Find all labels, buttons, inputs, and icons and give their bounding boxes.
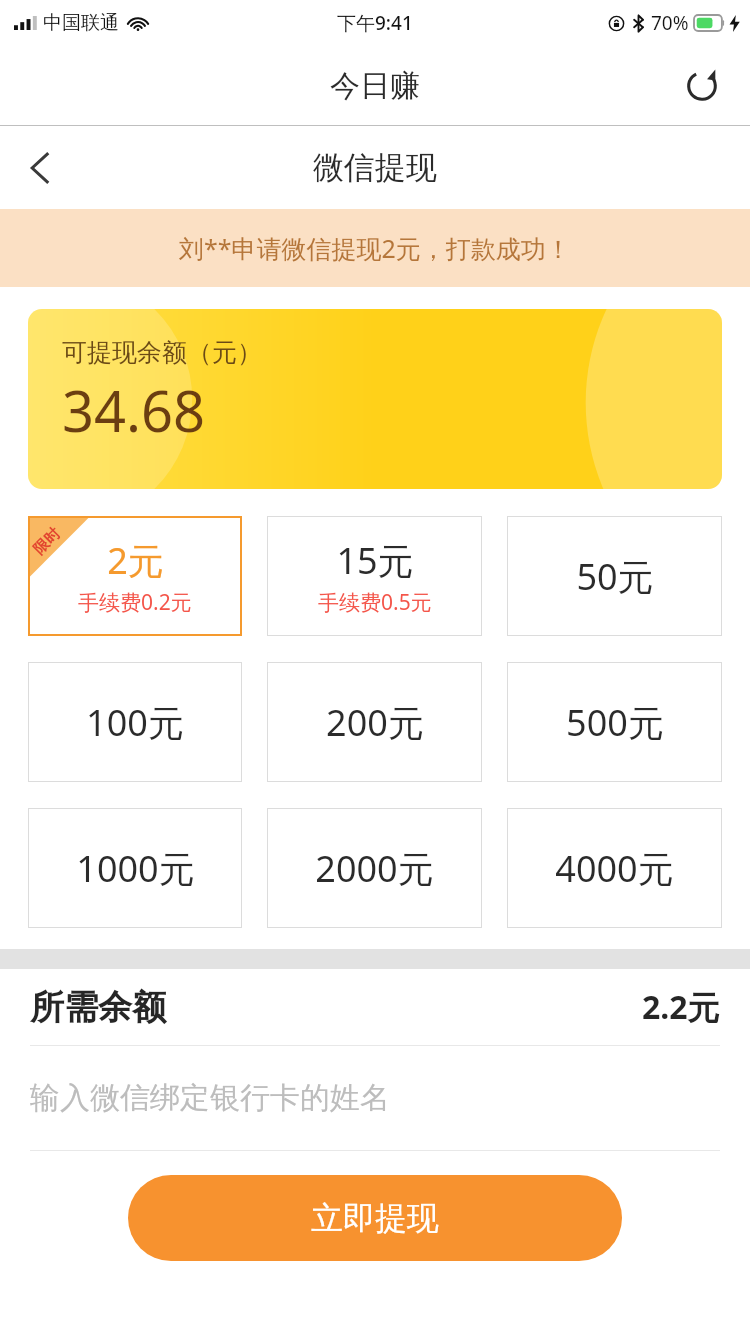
staticText: 2元	[107, 536, 164, 585]
staticText: 1000元	[76, 844, 195, 893]
button[interactable]: 15元	[267, 516, 482, 636]
button[interactable]: 立即提现	[128, 1175, 622, 1261]
staticText: 2000元	[315, 844, 434, 893]
staticText: 所需余额	[30, 986, 166, 1029]
staticText: 50元	[576, 552, 654, 601]
staticText: 100元	[86, 698, 184, 747]
button[interactable]: Back	[12, 139, 70, 197]
button[interactable]: 输入微信绑定银行卡的姓名	[0, 1046, 750, 1150]
staticText: 34.68	[62, 372, 206, 448]
staticText: 可提现余额（元）	[62, 337, 262, 368]
staticText: 2.2元	[642, 985, 720, 1029]
staticText: 4000元	[555, 844, 674, 893]
button[interactable]: 2000元	[267, 808, 482, 928]
staticText: 限时	[30, 524, 64, 559]
staticText: 中国联通	[43, 11, 119, 35]
button[interactable]: 4000元	[507, 808, 722, 928]
staticText: 刘**申请微信提现2元，打款成功！	[179, 231, 571, 265]
staticText: 输入微信绑定银行卡的姓名	[30, 1079, 390, 1117]
staticText: 今日赚	[330, 67, 420, 105]
button[interactable]: 限时	[28, 516, 242, 636]
button[interactable]: Refresh	[674, 58, 730, 114]
staticText: 立即提现	[311, 1198, 439, 1238]
staticText: 500元	[566, 698, 664, 747]
button[interactable]: 200元	[267, 662, 482, 782]
staticText: 手续费0.5元	[318, 588, 432, 617]
button[interactable]: 500元	[507, 662, 722, 782]
staticText: 15元	[336, 536, 414, 585]
button[interactable]: 100元	[28, 662, 242, 782]
button[interactable]: 1000元	[28, 808, 242, 928]
staticText: 微信提现	[313, 148, 437, 187]
button[interactable]: 50元	[507, 516, 722, 636]
staticText: 70%	[651, 10, 689, 36]
button[interactable]: 可提现余额（元）	[28, 309, 722, 489]
staticText: 手续费0.2元	[78, 588, 192, 617]
staticText: 下午9:41	[337, 10, 413, 36]
staticText: 200元	[326, 698, 424, 747]
